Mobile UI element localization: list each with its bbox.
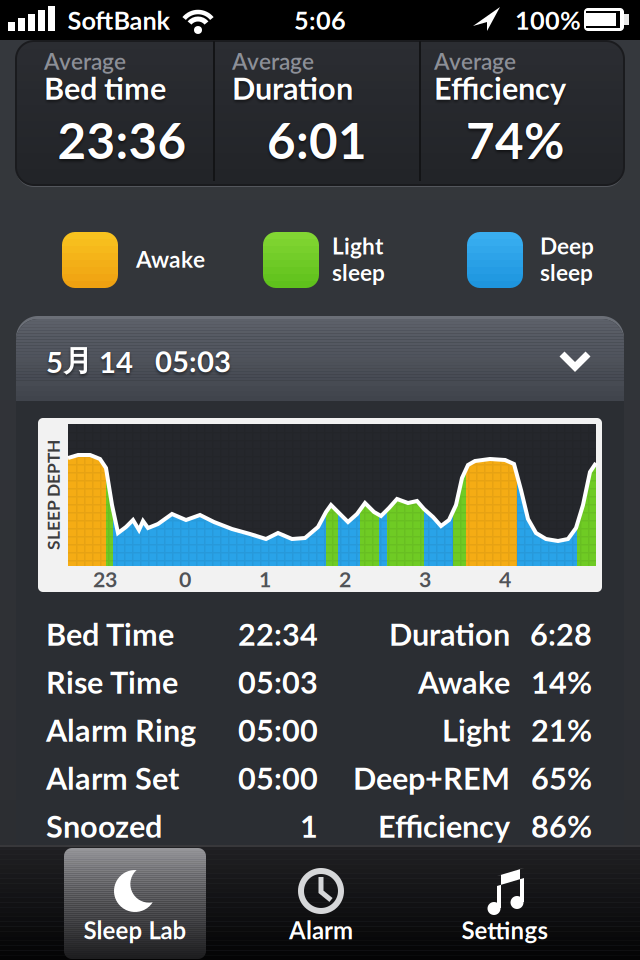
staticText: 21% bbox=[531, 712, 592, 748]
staticText: Efficiency bbox=[434, 70, 566, 106]
staticText: Average bbox=[434, 48, 516, 74]
staticText: Awake bbox=[418, 664, 510, 700]
staticText: SoftBank bbox=[67, 5, 170, 35]
staticText: 14% bbox=[531, 664, 592, 700]
staticText: 23:36 bbox=[57, 111, 186, 169]
staticText: 1 bbox=[259, 566, 271, 591]
staticText: 23 bbox=[93, 566, 117, 591]
staticText: 74% bbox=[466, 111, 564, 169]
staticText: 05:03 bbox=[155, 344, 231, 378]
staticText: 5:06 bbox=[294, 5, 346, 35]
staticText: 3 bbox=[419, 566, 431, 591]
staticText: Awake bbox=[136, 246, 205, 272]
staticText: Rise Time bbox=[46, 664, 178, 700]
staticText: Bed Time bbox=[46, 616, 174, 652]
staticText: 6:28 bbox=[530, 616, 592, 652]
staticText: Alarm Ring bbox=[46, 712, 196, 748]
staticText: 65% bbox=[531, 760, 592, 796]
staticText: Deep+REM bbox=[353, 760, 510, 796]
staticText: Alarm Set bbox=[46, 760, 179, 796]
staticText: Average bbox=[232, 48, 314, 74]
staticText: Light bbox=[442, 712, 510, 748]
staticText: 5月 14 bbox=[46, 343, 133, 379]
staticText: 4 bbox=[499, 566, 511, 591]
staticText: 05:00 bbox=[238, 760, 318, 796]
staticText: Average bbox=[44, 48, 126, 74]
staticText: 0 bbox=[179, 566, 191, 591]
staticText: Snoozed bbox=[46, 808, 162, 844]
button[interactable]: Settings bbox=[430, 848, 580, 959]
staticText: 6:01 bbox=[267, 111, 367, 169]
staticText: 05:03 bbox=[238, 664, 318, 700]
staticText: Deep sleep bbox=[540, 232, 594, 285]
button[interactable]: 5月 14 bbox=[16, 319, 624, 401]
staticText: 86% bbox=[531, 808, 592, 844]
staticText: Duration bbox=[389, 616, 510, 652]
staticText: 1 bbox=[300, 808, 318, 844]
staticText: Bed time bbox=[44, 70, 166, 106]
staticText: Alarm bbox=[289, 916, 353, 944]
staticText: Sleep Lab bbox=[83, 916, 186, 944]
button[interactable]: Sleep Lab bbox=[64, 848, 206, 959]
staticText: Settings bbox=[461, 916, 548, 944]
staticText: 05:00 bbox=[238, 712, 318, 748]
staticText: 100% bbox=[515, 5, 581, 35]
staticText: SLEEP DEPTH bbox=[0, 485, 108, 505]
staticText: 22:34 bbox=[238, 616, 318, 652]
staticText: Efficiency bbox=[378, 808, 510, 844]
staticText: Light sleep bbox=[332, 232, 385, 285]
staticText: 2 bbox=[339, 566, 351, 591]
staticText: Duration bbox=[232, 70, 353, 106]
button[interactable]: Alarm bbox=[246, 848, 396, 959]
